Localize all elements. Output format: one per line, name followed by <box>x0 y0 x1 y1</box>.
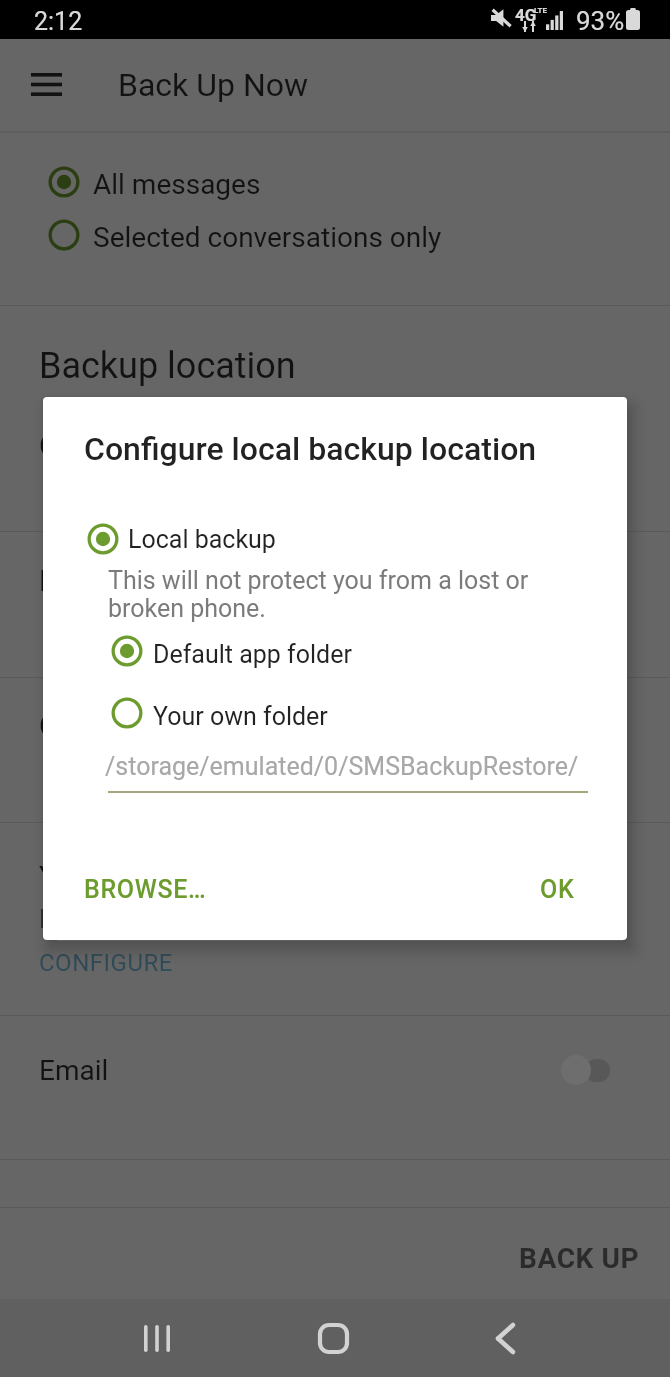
staticText: All messages <box>93 168 261 201</box>
staticText: Dropbox <box>39 564 148 598</box>
staticText: Your own server <box>39 860 247 894</box>
staticText: /storage/emulated/0/SMSBackupRestore/ <box>105 752 579 781</box>
staticText: 2:12 <box>34 7 83 36</box>
staticText: LTE <box>534 6 547 15</box>
staticText: Google Drive <box>39 429 203 463</box>
staticText: Backup location <box>39 345 296 387</box>
button[interactable]: OK <box>515 857 603 919</box>
staticText: BROWSE… <box>84 875 207 904</box>
button[interactable]: Recent apps <box>131 1312 183 1364</box>
staticText: Configure local backup location <box>84 430 537 468</box>
staticText: Default app folder <box>153 640 352 669</box>
staticText: Selected conversations only <box>93 221 442 254</box>
staticText: CONFIGURE <box>39 949 173 977</box>
staticText: 93% <box>576 6 625 36</box>
staticText: Local backup <box>128 525 276 554</box>
button[interactable]: BACK UP <box>495 1228 655 1286</box>
staticText: broken phone. <box>108 594 266 623</box>
button[interactable]: Your own folder <box>107 691 577 739</box>
staticText: Disconnected <box>39 905 192 934</box>
button[interactable]: Home <box>307 1312 359 1364</box>
button[interactable]: Email toggle <box>555 1048 617 1092</box>
staticText: OneDrive <box>39 709 156 743</box>
staticText: Back Up Now <box>118 66 309 104</box>
button[interactable]: Default app folder <box>107 629 577 677</box>
button[interactable]: BROWSE… <box>67 857 247 919</box>
staticText: 4G <box>515 5 537 25</box>
button[interactable]: Open navigation menu <box>22 64 70 104</box>
staticText: BACK UP <box>519 1242 640 1275</box>
staticText: Email <box>39 1054 109 1087</box>
button[interactable]: Back <box>479 1312 531 1364</box>
button[interactable]: Local backup <box>83 517 583 561</box>
staticText: Your own folder <box>153 702 328 731</box>
staticText: This will not protect you from a lost or <box>108 566 529 595</box>
staticText: OK <box>540 875 575 904</box>
